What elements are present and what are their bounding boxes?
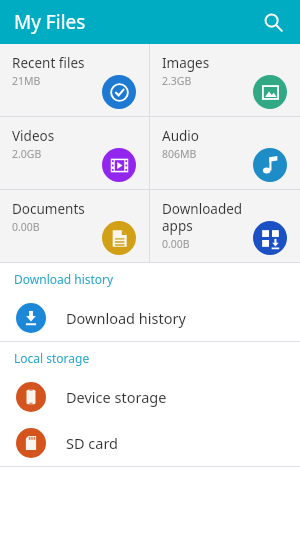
staticText: 0.00B (162, 237, 190, 251)
staticText: Device storage (66, 387, 167, 407)
button[interactable]: Documents (0, 190, 149, 262)
staticText: Videos (12, 127, 55, 145)
button[interactable]: Images (150, 44, 300, 116)
button[interactable]: Videos (0, 117, 149, 189)
staticText: SD card (66, 433, 119, 453)
staticText: Local storage (14, 350, 90, 366)
button[interactable]: Recent files (0, 44, 149, 116)
button[interactable]: Search (256, 5, 290, 39)
staticText: My Files (14, 9, 86, 35)
staticText: Images (162, 54, 210, 72)
button[interactable]: SD card (0, 420, 300, 466)
staticText: 21MB (12, 74, 41, 88)
staticText: Documents (12, 200, 85, 218)
staticText: 806MB (162, 147, 197, 161)
button[interactable]: Downloaded apps (150, 190, 300, 262)
staticText: Audio (162, 127, 199, 145)
button[interactable]: Download history (0, 295, 300, 341)
staticText: 2.0GB (12, 147, 42, 161)
staticText: Download history (66, 308, 186, 328)
button[interactable]: Audio (150, 117, 300, 189)
staticText: 2.3GB (162, 74, 192, 88)
staticText: Downloaded apps (162, 200, 250, 235)
staticText: Download history (14, 271, 114, 287)
staticText: 0.00B (12, 220, 40, 234)
button[interactable]: Device storage (0, 374, 300, 420)
staticText: Recent files (12, 54, 85, 72)
